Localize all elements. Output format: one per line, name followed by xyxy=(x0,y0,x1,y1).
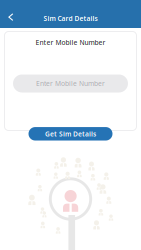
staticText: Get Sim Details xyxy=(45,129,96,138)
button[interactable]: Get Sim Details xyxy=(28,127,112,141)
staticText: Enter Mobile Number xyxy=(36,79,105,88)
button[interactable]: Back xyxy=(1,7,21,27)
staticText: Sim Card Details xyxy=(43,14,97,23)
staticText: Enter Mobile Number xyxy=(35,38,105,47)
